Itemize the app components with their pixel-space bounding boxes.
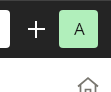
staticText: A (74, 17, 85, 40)
button[interactable]: Home (76, 75, 100, 92)
button[interactable]: A (59, 10, 98, 48)
button[interactable] (0, 10, 10, 48)
button[interactable]: Add (28, 21, 45, 38)
